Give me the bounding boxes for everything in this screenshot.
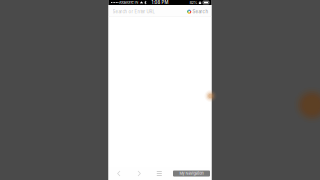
button[interactable]: Search — [187, 9, 208, 14]
button[interactable]: Menu — [153, 169, 165, 178]
staticText: Search or Enter URL — [112, 9, 154, 14]
staticText: Vodafone IN — [118, 0, 138, 5]
button[interactable]: Back — [113, 169, 125, 178]
staticText: Search — [192, 9, 208, 14]
staticText: 1:08 PM — [151, 0, 168, 5]
button[interactable]: My Navigation — [173, 170, 210, 176]
staticText: 82% — [189, 0, 197, 5]
staticText: My Navigation — [179, 171, 203, 176]
button[interactable]: Forward — [133, 169, 145, 178]
